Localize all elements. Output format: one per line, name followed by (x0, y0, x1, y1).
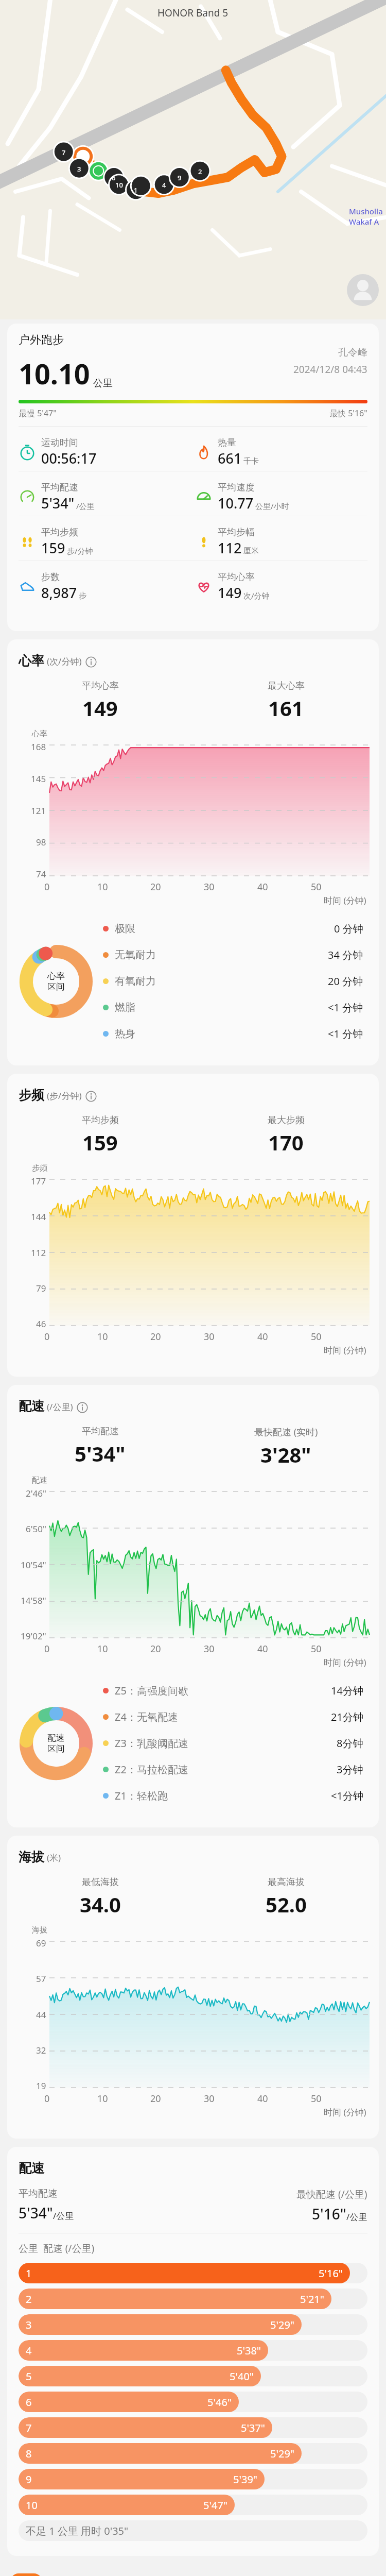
staticText: HONOR Band 5 (157, 6, 229, 20)
staticText: 配速 (32, 1476, 47, 1485)
button[interactable]: Huawei Health (10, 2573, 42, 2576)
staticText: 5'29" (270, 2447, 294, 2461)
staticText: 区间 (47, 1743, 65, 1754)
staticText: 10 (115, 180, 123, 190)
staticText: (次/分钟) (47, 655, 82, 667)
button[interactable]: Info (85, 1091, 97, 1102)
staticText: 30 (204, 1642, 215, 1655)
staticText: 配速 (19, 2160, 44, 2176)
staticText: 98 (36, 836, 46, 848)
button[interactable]: 8 (19, 2443, 367, 2464)
staticText: 00:56:17 (41, 449, 97, 468)
staticText: 8 (26, 2447, 32, 2461)
button[interactable]: 7 (19, 2417, 367, 2438)
staticText: <1分钟 (331, 1789, 363, 1803)
staticText: 46 (36, 1318, 46, 1330)
button[interactable]: 步频 (7, 1074, 379, 1377)
staticText: 30 (204, 1330, 215, 1343)
button[interactable]: Info (85, 656, 97, 668)
button[interactable]: 6 (19, 2392, 367, 2412)
staticText: 1 (26, 2266, 32, 2280)
button[interactable]: 心率 (7, 639, 379, 1065)
staticText: 不足 1 公里 用时 0'35" (26, 2524, 129, 2538)
staticText: 34 分钟 (328, 948, 363, 962)
staticText: 149 (218, 583, 242, 602)
staticText: 40 (257, 2092, 268, 2105)
staticText: 最大心率 (268, 680, 305, 692)
button[interactable]: 热身 (103, 1027, 379, 1041)
staticText: 112 (31, 1247, 46, 1259)
staticText: 热身 (115, 1027, 135, 1040)
staticText: 1 (134, 185, 138, 195)
staticText: 145 (31, 773, 46, 785)
staticText: 平均速度 (218, 482, 255, 494)
button[interactable]: Z4：无氧配速 (103, 1710, 379, 1724)
staticText: 14分钟 (331, 1684, 363, 1698)
staticText: Z2：马拉松配速 (115, 1762, 188, 1776)
button[interactable]: 1 (19, 2263, 367, 2283)
button[interactable]: Z2：马拉松配速 (103, 1762, 379, 1776)
staticText: 7 (62, 148, 66, 157)
staticText: 5'37" (241, 2421, 265, 2435)
staticText: 5'34" (41, 494, 75, 513)
staticText: 最快配速 (/公里) (296, 2188, 367, 2201)
staticText: Z5：高强度间歇 (115, 1684, 188, 1698)
button[interactable]: 10 (19, 2495, 367, 2515)
button[interactable]: 户外跑步 (7, 324, 379, 631)
staticText: 心率 (19, 653, 44, 669)
button[interactable]: Z1：轻松跑 (103, 1789, 379, 1803)
staticText: 10 (97, 1330, 108, 1343)
staticText: 6 (26, 2395, 32, 2409)
staticText: 4 (26, 2344, 32, 2358)
staticText: 3'28" (260, 1440, 311, 1468)
staticText: (/公里) (47, 1401, 73, 1413)
staticText: 心率 (32, 729, 47, 739)
staticText: 52.0 (266, 1890, 307, 1918)
staticText: Musholla Wakaf A (349, 206, 383, 227)
button[interactable]: Z5：高强度间歇 (103, 1684, 379, 1698)
button[interactable]: 3 (19, 2314, 367, 2335)
button[interactable]: 无氧耐力 (103, 948, 379, 962)
button[interactable]: 配速 (7, 2147, 379, 2556)
staticText: 50 (311, 2092, 322, 2105)
button[interactable]: 2 (19, 2289, 367, 2309)
button[interactable]: Info (77, 1402, 88, 1413)
staticText: 121 (31, 805, 46, 817)
button[interactable]: 海拔 (7, 1836, 379, 2139)
staticText: 平均心率 (218, 571, 255, 583)
staticText: 159 (82, 1128, 118, 1156)
staticText: 6 (112, 173, 116, 182)
staticText: 公里 (93, 377, 113, 389)
staticText: 5'39" (233, 2472, 257, 2486)
button[interactable]: 极限 (103, 922, 379, 936)
button[interactable]: 9 (19, 2469, 367, 2489)
staticText: 次/分钟 (243, 590, 270, 601)
button[interactable]: 不足 1 公里 用时 0'35" (19, 2520, 367, 2541)
button[interactable]: 配速 (7, 1385, 379, 1827)
staticText: 运动时间 (41, 437, 78, 449)
staticText: 时间 (分钟) (324, 1656, 366, 1668)
staticText: 0 (44, 2092, 50, 2105)
button[interactable]: 燃脂 (103, 1001, 379, 1014)
staticText: 5'29" (270, 2318, 294, 2332)
staticText: 50 (311, 1642, 322, 1655)
staticText: <1 分钟 (328, 1001, 363, 1014)
button[interactable]: 4 (19, 2340, 367, 2361)
staticText: 区间 (47, 981, 65, 992)
staticText: 168 (31, 741, 46, 753)
staticText: 21分钟 (331, 1710, 363, 1724)
staticText: 配速 (19, 1398, 44, 1414)
staticText: 161 (268, 694, 304, 722)
staticText: 公里 配速 (/公里) (19, 2242, 95, 2255)
button[interactable]: 有氧耐力 (103, 974, 379, 988)
button[interactable]: User profile (347, 274, 379, 306)
staticText: 661 (218, 449, 242, 468)
staticText: 5'38" (237, 2344, 261, 2358)
staticText: (步/分钟) (47, 1090, 82, 1101)
staticText: 0 分钟 (334, 922, 363, 936)
staticText: 9 (178, 173, 182, 182)
staticText: Z1：轻松跑 (115, 1789, 168, 1803)
button[interactable]: 5 (19, 2366, 367, 2386)
staticText: 厘米 (243, 546, 259, 556)
button[interactable]: Z3：乳酸阈配速 (103, 1736, 379, 1750)
